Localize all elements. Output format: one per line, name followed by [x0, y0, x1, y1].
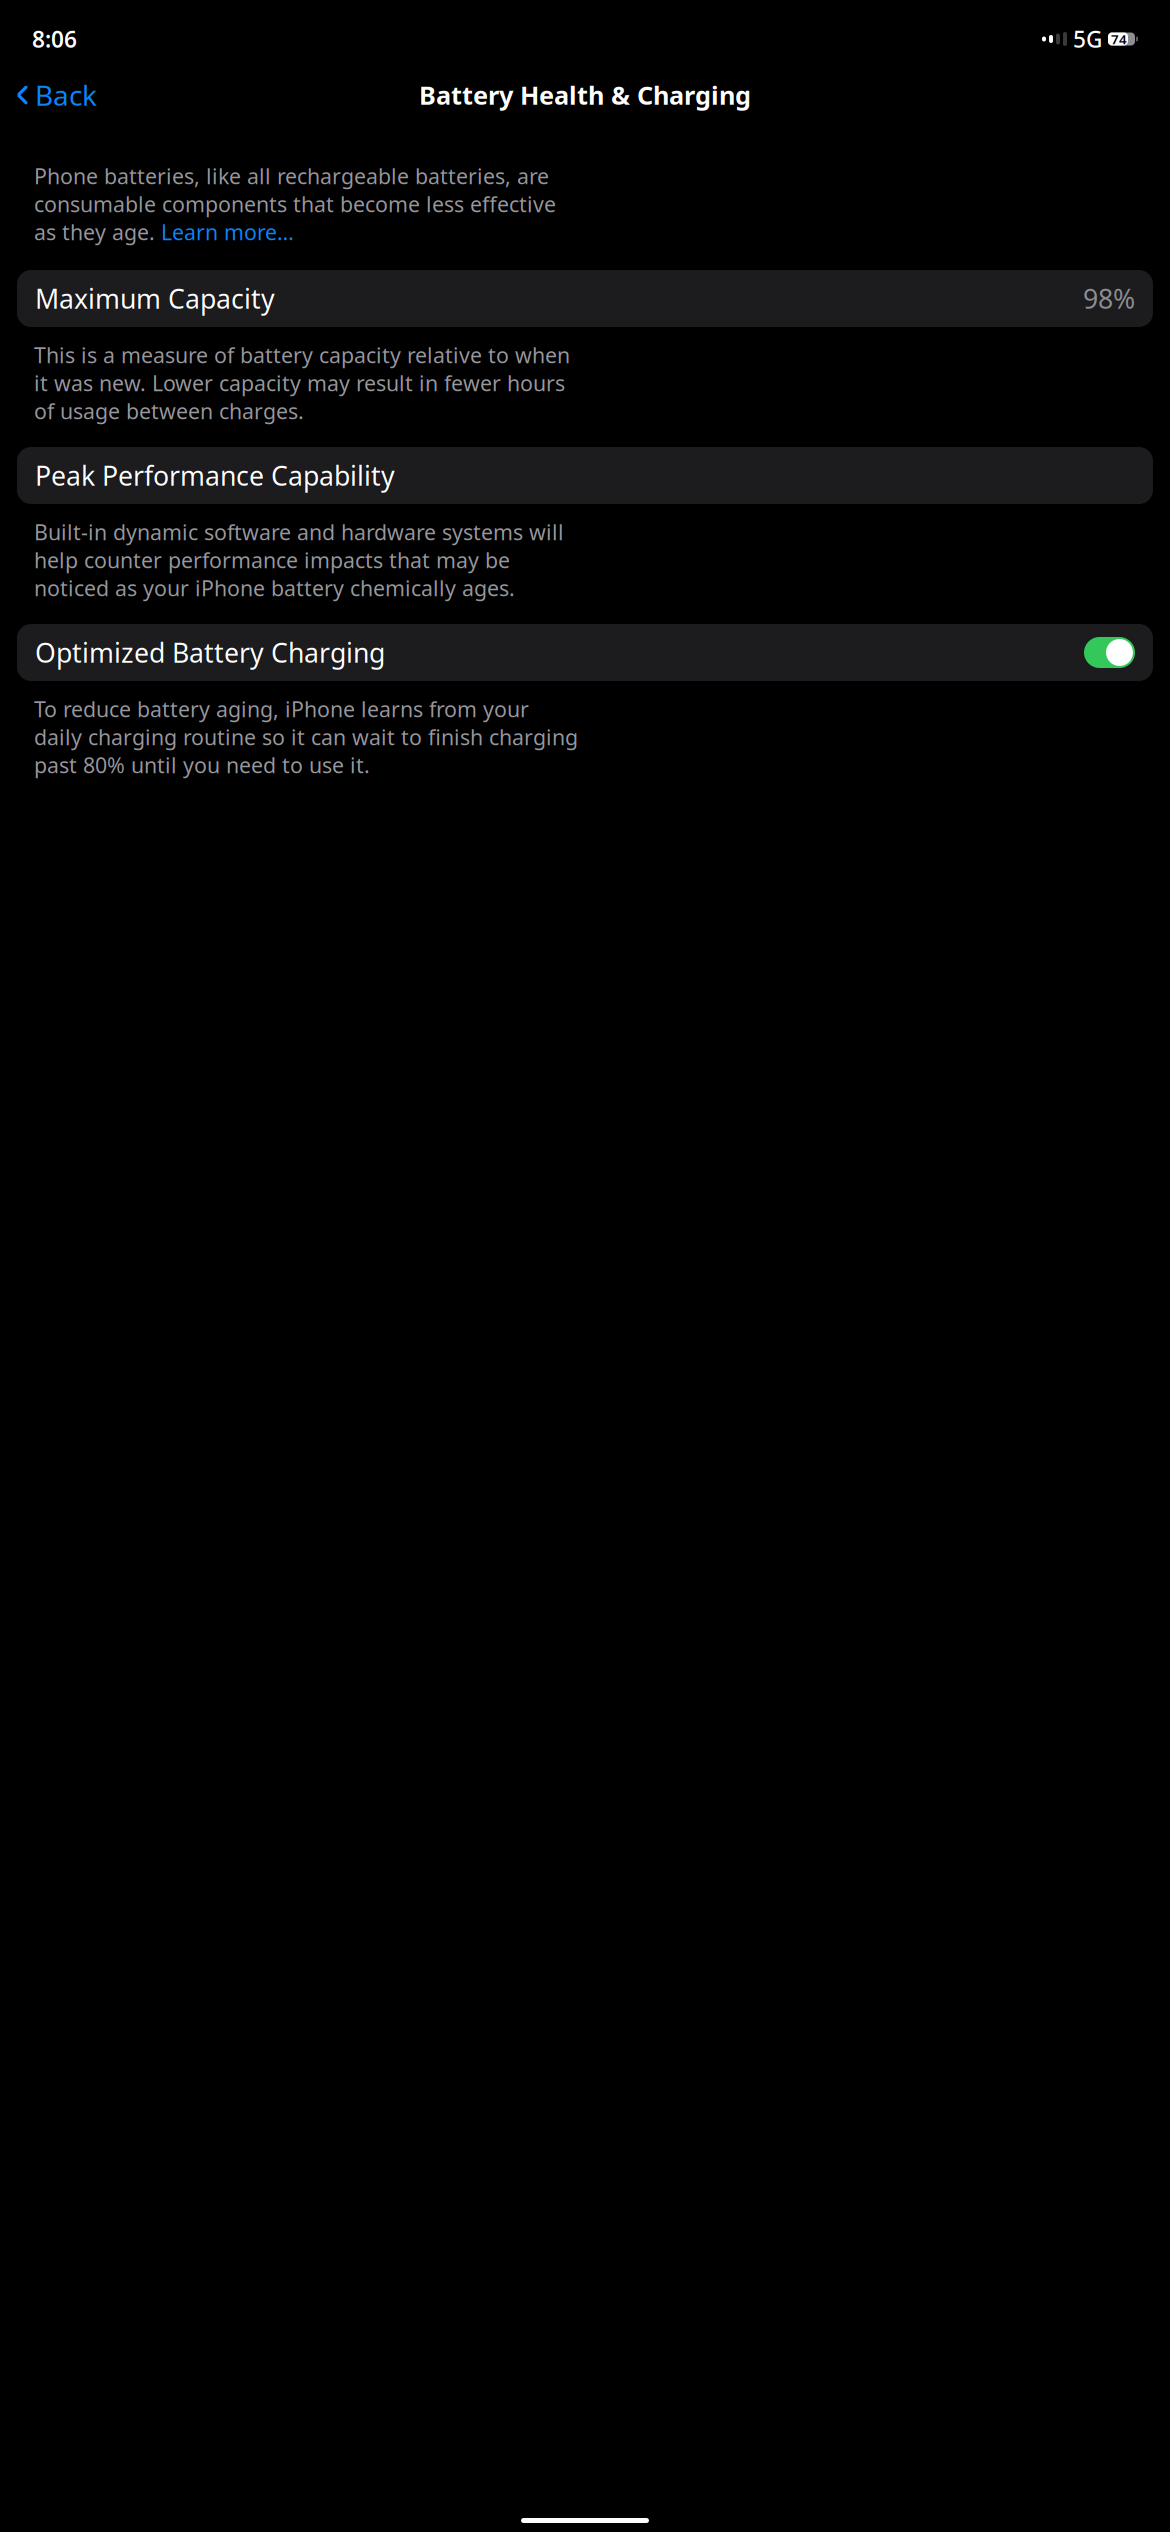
staticText: it was new. Lower capacity may result in…: [34, 369, 565, 397]
staticText: as they age.: [34, 218, 161, 246]
staticText: Battery Health & Charging: [419, 78, 751, 112]
staticText: Learn more…: [161, 218, 294, 246]
staticText: help counter performance impacts that ma…: [34, 546, 510, 574]
staticText: daily charging routine so it can wait to…: [34, 723, 578, 751]
button[interactable]: Learn more…: [161, 218, 294, 246]
staticText: 5G: [1073, 24, 1102, 54]
staticText: To reduce battery aging, iPhone learns f…: [34, 695, 529, 723]
staticText: consumable components that become less e…: [34, 190, 556, 218]
staticText: Maximum Capacity: [35, 281, 275, 316]
staticText: Optimized Battery Charging: [35, 635, 385, 670]
button[interactable]: Peak Performance Capability: [17, 447, 1153, 504]
staticText: past 80% until you need to use it.: [34, 751, 370, 779]
button[interactable]: Optimized Battery Charging: [17, 624, 1153, 681]
staticText: Phone batteries, like all rechargeable b…: [34, 162, 549, 190]
staticText: Peak Performance Capability: [35, 458, 395, 493]
staticText: Built-in dynamic software and hardware s…: [34, 518, 564, 546]
button[interactable]: Back: [8, 70, 105, 120]
staticText: Back: [35, 76, 97, 114]
staticText: of usage between charges.: [34, 397, 304, 425]
staticText: 74: [1111, 30, 1127, 48]
staticText: 98%: [1083, 281, 1135, 316]
staticText: This is a measure of battery capacity re…: [34, 341, 570, 369]
staticText: 8:06: [32, 24, 77, 54]
button[interactable]: Maximum Capacity: [17, 270, 1153, 327]
staticText: noticed as your iPhone battery chemicall…: [34, 574, 515, 602]
